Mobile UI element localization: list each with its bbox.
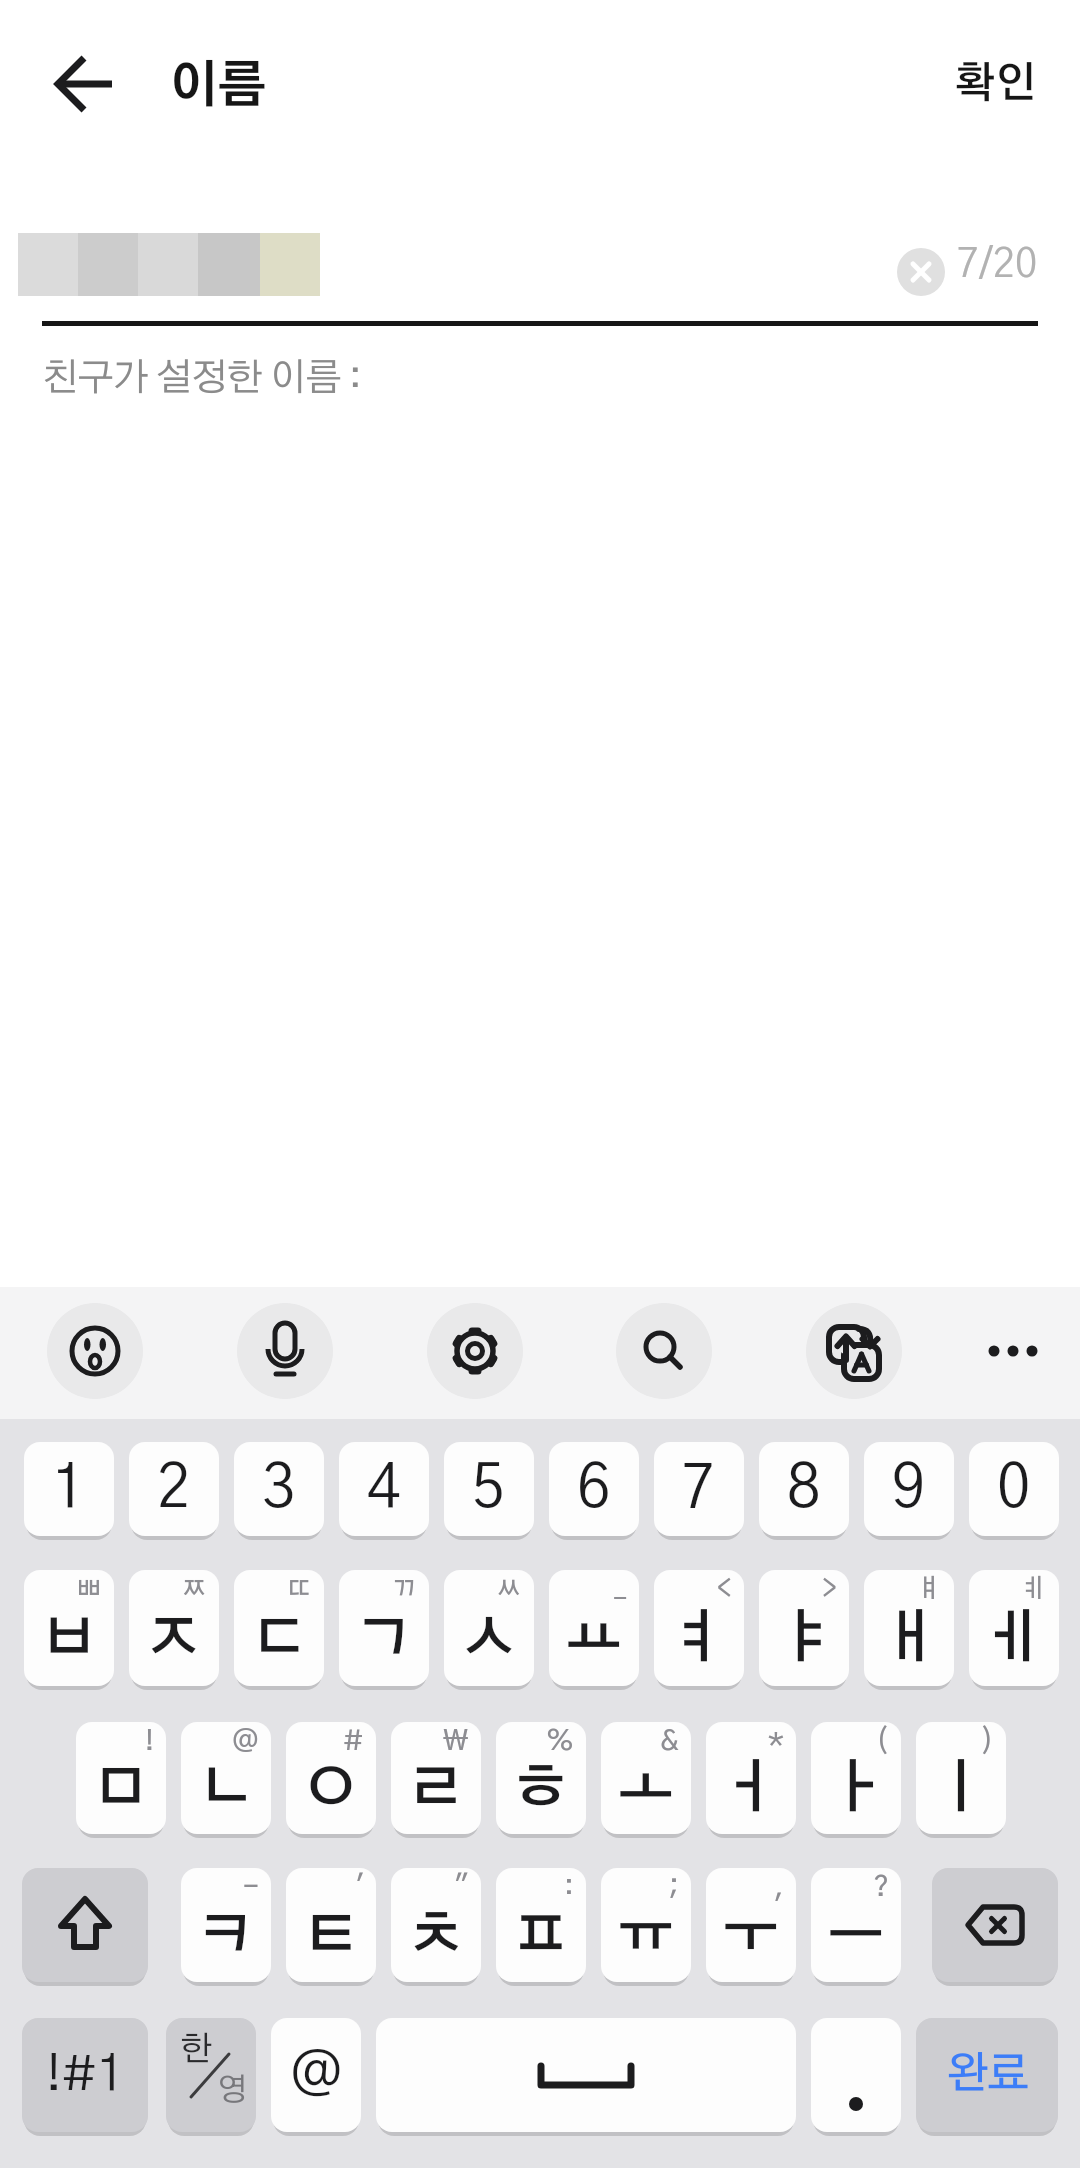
staticText: > bbox=[822, 1576, 837, 1602]
staticText: ㄸ bbox=[286, 1576, 312, 1602]
staticText: 2 bbox=[157, 1459, 191, 1519]
button[interactable]: 7 bbox=[654, 1442, 744, 1536]
button[interactable]: ㅗ bbox=[601, 1722, 691, 1834]
button[interactable]: 한 bbox=[166, 2018, 256, 2132]
button[interactable] bbox=[376, 2018, 796, 2132]
button[interactable]: ㅂ bbox=[24, 1570, 114, 1686]
button[interactable]: ㄱ bbox=[339, 1570, 429, 1686]
button[interactable]: 2 bbox=[129, 1442, 219, 1536]
staticText: ; bbox=[669, 1874, 679, 1902]
button[interactable]: ㅛ bbox=[549, 1570, 639, 1686]
button[interactable]: @ bbox=[271, 2018, 361, 2132]
staticText: ㅋ bbox=[197, 1908, 255, 1966]
button[interactable]: 1 bbox=[24, 1442, 114, 1536]
staticText: 완료 bbox=[946, 2053, 1028, 2097]
staticText: ㅔ bbox=[985, 1611, 1043, 1669]
staticText: 4 bbox=[367, 1459, 401, 1519]
button[interactable] bbox=[965, 1303, 1061, 1399]
button[interactable] bbox=[932, 1868, 1058, 1982]
button[interactable]: ㅅ bbox=[444, 1570, 534, 1686]
button[interactable] bbox=[616, 1303, 712, 1399]
staticText: ? bbox=[873, 1874, 889, 1902]
button[interactable] bbox=[47, 1303, 143, 1399]
staticText: ㅡ bbox=[827, 1908, 885, 1966]
button[interactable]: ㅡ bbox=[811, 1868, 901, 1982]
button[interactable]: ㅑ bbox=[759, 1570, 849, 1686]
staticText: 1 bbox=[52, 1459, 86, 1519]
button[interactable]: ㅜ bbox=[706, 1868, 796, 1982]
staticText: ) bbox=[981, 1728, 994, 1756]
button[interactable]: ㅕ bbox=[654, 1570, 744, 1686]
button[interactable] bbox=[40, 40, 130, 130]
button[interactable]: ㅎ bbox=[496, 1722, 586, 1834]
staticText: 한 bbox=[180, 2033, 213, 2067]
staticText: 친구가 설정한 이름 : bbox=[42, 360, 361, 398]
staticText: 8 bbox=[787, 1459, 821, 1519]
button[interactable]: ㅏ bbox=[811, 1722, 901, 1834]
staticText: ( bbox=[876, 1728, 889, 1756]
staticText: : bbox=[564, 1874, 574, 1902]
staticText: 6 bbox=[577, 1459, 611, 1519]
staticText: ㄱ bbox=[355, 1611, 413, 1669]
staticText: ㅃ bbox=[76, 1576, 102, 1602]
staticText: ㅁ bbox=[92, 1761, 150, 1819]
button[interactable]: ㄴ bbox=[181, 1722, 271, 1834]
button[interactable] bbox=[811, 2018, 901, 2132]
staticText: ㅗ bbox=[617, 1761, 675, 1819]
button[interactable]: 3 bbox=[234, 1442, 324, 1536]
staticText: ! bbox=[145, 1728, 154, 1756]
staticText: ㅜ bbox=[722, 1908, 780, 1966]
button[interactable] bbox=[427, 1303, 523, 1399]
button[interactable]: ㅇ bbox=[286, 1722, 376, 1834]
button[interactable]: 6 bbox=[549, 1442, 639, 1536]
staticText: 7/20 bbox=[957, 245, 1038, 285]
staticText: 이름 bbox=[169, 62, 266, 112]
button[interactable]: !#1 bbox=[22, 2018, 148, 2132]
staticText: ㅠ bbox=[617, 1908, 675, 1966]
staticText: ㅂ bbox=[40, 1611, 98, 1669]
staticText: 확인 bbox=[954, 63, 1037, 105]
button[interactable]: ㅍ bbox=[496, 1868, 586, 1982]
button[interactable]: ㅈ bbox=[129, 1570, 219, 1686]
button[interactable]: 0 bbox=[969, 1442, 1059, 1536]
button[interactable]: ㅔ bbox=[969, 1570, 1059, 1686]
button[interactable]: ㅊ bbox=[391, 1868, 481, 1982]
staticText: 7 bbox=[682, 1459, 716, 1519]
button[interactable]: 완료 bbox=[916, 2018, 1058, 2132]
staticText: ㄲ bbox=[391, 1576, 417, 1602]
button[interactable]: ㅓ bbox=[706, 1722, 796, 1834]
staticText: ㅣ bbox=[932, 1761, 990, 1819]
button[interactable] bbox=[897, 248, 945, 296]
staticText: ㅈ bbox=[145, 1611, 203, 1669]
button[interactable]: 확인 bbox=[940, 48, 1050, 120]
staticText: # bbox=[343, 1728, 364, 1756]
staticText: ㅎ bbox=[512, 1761, 570, 1819]
button[interactable]: 8 bbox=[759, 1442, 849, 1536]
button[interactable]: 4 bbox=[339, 1442, 429, 1536]
staticText: , bbox=[774, 1874, 784, 1902]
button[interactable] bbox=[237, 1303, 333, 1399]
button[interactable]: ㅋ bbox=[181, 1868, 271, 1982]
staticText: ㅓ bbox=[722, 1761, 780, 1819]
button[interactable]: 5 bbox=[444, 1442, 534, 1536]
staticText: < bbox=[717, 1576, 732, 1602]
staticText: * bbox=[768, 1728, 784, 1756]
button[interactable]: ㅌ bbox=[286, 1868, 376, 1982]
button[interactable]: ㅐ bbox=[864, 1570, 954, 1686]
staticText: ㅐ bbox=[880, 1611, 938, 1669]
button[interactable]: ㄹ bbox=[391, 1722, 481, 1834]
staticText: - bbox=[243, 1874, 259, 1902]
button[interactable] bbox=[806, 1303, 902, 1399]
button[interactable]: ㅠ bbox=[601, 1868, 691, 1982]
staticText: 9 bbox=[892, 1459, 926, 1519]
button[interactable] bbox=[22, 1868, 148, 1982]
staticText: 0 bbox=[997, 1459, 1031, 1519]
button[interactable]: ㅁ bbox=[76, 1722, 166, 1834]
button[interactable]: 9 bbox=[864, 1442, 954, 1536]
button[interactable]: ㄷ bbox=[234, 1570, 324, 1686]
staticText: ㅉ bbox=[181, 1576, 207, 1602]
button[interactable]: ㅣ bbox=[916, 1722, 1006, 1834]
staticText: ㅇ bbox=[302, 1761, 360, 1819]
staticText: ㅅ bbox=[460, 1611, 518, 1669]
staticText: ㅌ bbox=[302, 1908, 360, 1966]
